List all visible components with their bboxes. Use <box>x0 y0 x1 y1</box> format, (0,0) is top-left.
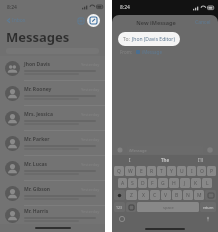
staticText: S <box>131 180 134 187</box>
button[interactable]: Mr. Parker <box>0 131 105 156</box>
button[interactable]: Mr. Lucas <box>0 156 105 181</box>
staticText: T <box>160 168 163 175</box>
button[interactable]: J <box>180 178 190 188</box>
button[interactable]: U <box>177 166 186 176</box>
staticText: Jhon (Davis Editor) <box>132 36 175 43</box>
staticText: iMessage <box>142 49 162 55</box>
button[interactable]: I <box>187 166 196 176</box>
staticText: Mr. Harris <box>24 208 49 215</box>
staticText: New iMessage <box>136 19 176 26</box>
button[interactable]: Y <box>167 166 176 176</box>
button[interactable]: O <box>197 166 206 176</box>
button[interactable]: F <box>148 178 157 188</box>
button[interactable]: T <box>157 166 166 176</box>
staticText: 123 <box>116 205 123 210</box>
button[interactable]: 123 <box>114 202 125 212</box>
button[interactable]: Mr. Rooney <box>0 81 105 106</box>
button[interactable]: space <box>137 202 199 212</box>
button[interactable]: Mrs. Jessica <box>0 106 105 131</box>
button[interactable]: K <box>191 178 201 188</box>
button[interactable]: B <box>172 190 182 200</box>
staticText: iMessage <box>129 148 147 153</box>
staticText: G <box>161 180 165 187</box>
staticText: M <box>197 192 202 199</box>
staticText: W <box>128 168 133 175</box>
button[interactable]: Send <box>207 147 213 153</box>
button[interactable]: G <box>158 178 168 188</box>
button[interactable]: Apps <box>117 147 123 153</box>
staticText: I'll <box>198 157 203 163</box>
staticText: Mr. Rooney <box>24 86 52 93</box>
staticText: Jhon Davis <box>24 61 51 68</box>
button[interactable]: M <box>194 190 204 200</box>
button[interactable]: iMessage <box>126 146 204 154</box>
button[interactable]: W <box>125 166 135 176</box>
staticText: O <box>200 168 204 175</box>
button[interactable]: Mr. Gibson <box>0 181 105 206</box>
button[interactable]: Z <box>126 190 137 200</box>
button[interactable]: X <box>138 190 149 200</box>
button[interactable]: Q <box>114 166 124 176</box>
button[interactable]: E <box>136 166 146 176</box>
button[interactable]: Emoji <box>126 202 136 212</box>
button[interactable]: P <box>207 166 216 176</box>
button[interactable]: Compose new message <box>87 14 100 27</box>
staticText: I <box>191 168 193 175</box>
staticText: I <box>129 157 131 163</box>
button[interactable]: N <box>183 190 193 200</box>
staticText: E <box>140 168 143 175</box>
staticText: Mr. Parker <box>24 136 50 143</box>
staticText: return <box>203 205 214 210</box>
button[interactable]: Shift <box>114 190 125 200</box>
staticText: Inbox <box>12 17 26 24</box>
button[interactable]: L <box>202 178 212 188</box>
button[interactable]: return <box>200 202 216 212</box>
button[interactable]: S <box>128 178 137 188</box>
button[interactable]: Jhon Davis <box>0 56 105 81</box>
staticText: The <box>161 157 170 163</box>
staticText: L <box>206 180 209 187</box>
staticText: Z <box>130 192 133 199</box>
button[interactable]: Change keyboard <box>119 216 125 222</box>
staticText: P <box>210 168 214 175</box>
staticText: A <box>121 180 125 187</box>
staticText: Y <box>170 168 173 175</box>
staticText: Messages <box>6 28 70 46</box>
button[interactable]: Mr. Harris <box>0 206 105 224</box>
staticText: N <box>186 192 190 199</box>
staticText: C <box>153 192 157 199</box>
staticText: Mrs. Jessica <box>24 111 53 118</box>
button[interactable]: D <box>138 178 147 188</box>
button[interactable]: To: <box>118 32 180 46</box>
staticText: K <box>194 180 198 187</box>
button[interactable]: A <box>118 178 127 188</box>
staticText: From: <box>120 49 133 55</box>
button[interactable]: H <box>169 178 179 188</box>
button[interactable]: Cancel <box>194 19 212 26</box>
button[interactable]: The <box>148 155 183 165</box>
staticText: V <box>164 192 168 199</box>
button[interactable]: C <box>150 190 160 200</box>
staticText: To: <box>123 36 130 43</box>
button[interactable]: Inbox <box>5 17 27 24</box>
staticText: U <box>180 168 184 175</box>
staticText: Mr. Lucas <box>24 161 47 168</box>
staticText: F <box>151 180 154 187</box>
button[interactable]: V <box>161 190 171 200</box>
staticText: X <box>142 192 145 199</box>
button[interactable]: Filter <box>75 15 86 26</box>
button[interactable]: Dictate <box>205 216 211 222</box>
staticText: space <box>163 205 174 210</box>
button[interactable]: I <box>112 155 148 165</box>
staticText: D <box>141 180 145 187</box>
button[interactable]: Backspace <box>205 190 216 200</box>
staticText: B <box>175 192 179 199</box>
button[interactable]: I'll <box>183 155 218 165</box>
staticText: 8:24 <box>120 4 130 11</box>
button[interactable]: R <box>147 166 156 176</box>
